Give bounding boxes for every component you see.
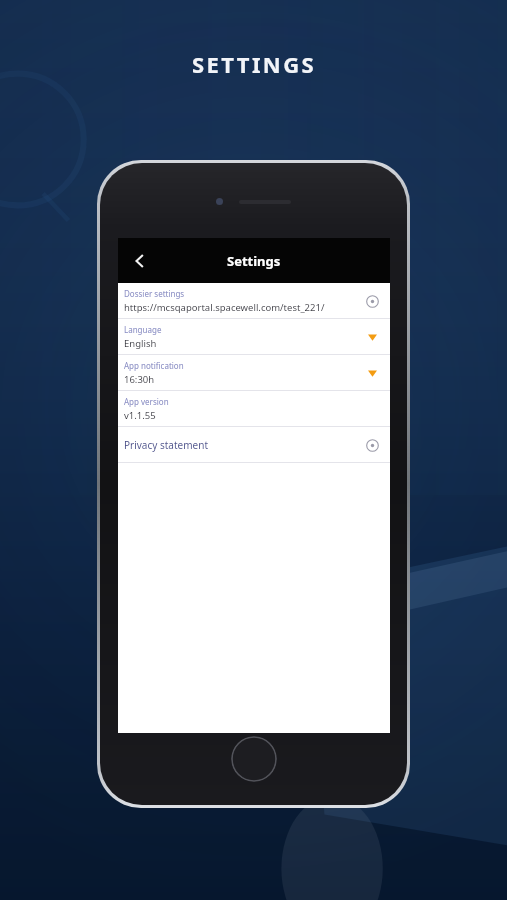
- staticText: v1.1.55: [124, 409, 156, 422]
- staticText: App notification: [124, 360, 184, 371]
- staticText: Dossier settings: [124, 288, 185, 299]
- button[interactable]: App notification: [118, 355, 390, 390]
- staticText: App version: [124, 396, 169, 407]
- staticText: Privacy statement: [124, 438, 360, 452]
- staticText: English: [124, 337, 157, 350]
- staticText: https://mcsqaportal.spacewell.com/test_2…: [124, 301, 325, 314]
- button[interactable]: App version: [118, 391, 390, 426]
- button[interactable]: Dossier settings: [118, 283, 390, 318]
- staticText: SETTINGS: [192, 49, 316, 79]
- staticText: Language: [124, 324, 162, 335]
- button[interactable]: Language: [118, 319, 390, 354]
- button[interactable]: Back: [118, 239, 162, 283]
- staticText: 16:30h: [124, 373, 155, 386]
- staticText: Settings: [227, 252, 281, 270]
- button[interactable]: Privacy statement: [118, 427, 390, 462]
- button[interactable]: Home: [231, 736, 277, 782]
